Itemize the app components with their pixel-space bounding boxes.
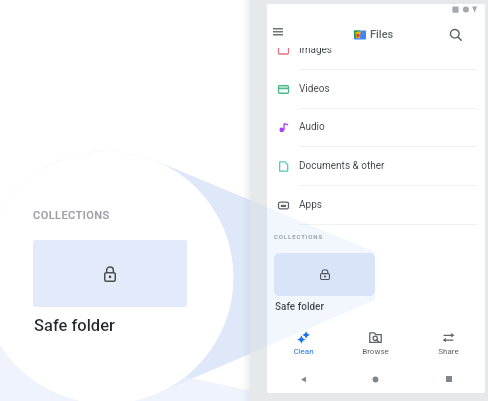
button[interactable]: Browse — [339, 327, 412, 356]
staticText: Safe folder — [34, 316, 115, 335]
staticText: Apps — [299, 199, 322, 211]
button[interactable]: Back — [267, 370, 339, 388]
staticText: COLLECTIONS — [274, 233, 324, 240]
button[interactable]: Videos — [267, 70, 485, 108]
button[interactable]: Safe folder — [33, 240, 187, 307]
button[interactable]: Home — [339, 370, 412, 388]
staticText: Images — [299, 44, 333, 56]
button[interactable]: Search — [444, 23, 468, 47]
staticText: Audio — [299, 121, 325, 133]
staticText: Browse — [362, 347, 389, 356]
button[interactable]: Clean — [267, 327, 339, 356]
button[interactable]: Documents & other — [267, 147, 485, 185]
button[interactable]: Images — [267, 31, 485, 69]
staticText: Videos — [299, 83, 330, 95]
button[interactable]: Apps — [267, 186, 485, 224]
staticText: Documents & other — [299, 160, 385, 172]
staticText: Files — [370, 28, 394, 41]
button[interactable]: Audio — [267, 108, 485, 146]
staticText: COLLECTIONS — [33, 209, 110, 222]
button[interactable]: Safe folder — [274, 253, 375, 296]
button[interactable]: Menu — [267, 19, 291, 45]
staticText: Clean — [293, 347, 314, 356]
staticText: Share — [438, 347, 459, 356]
button[interactable]: Recents — [412, 370, 485, 388]
button[interactable]: Share — [412, 327, 485, 356]
staticText: Safe folder — [275, 301, 324, 313]
